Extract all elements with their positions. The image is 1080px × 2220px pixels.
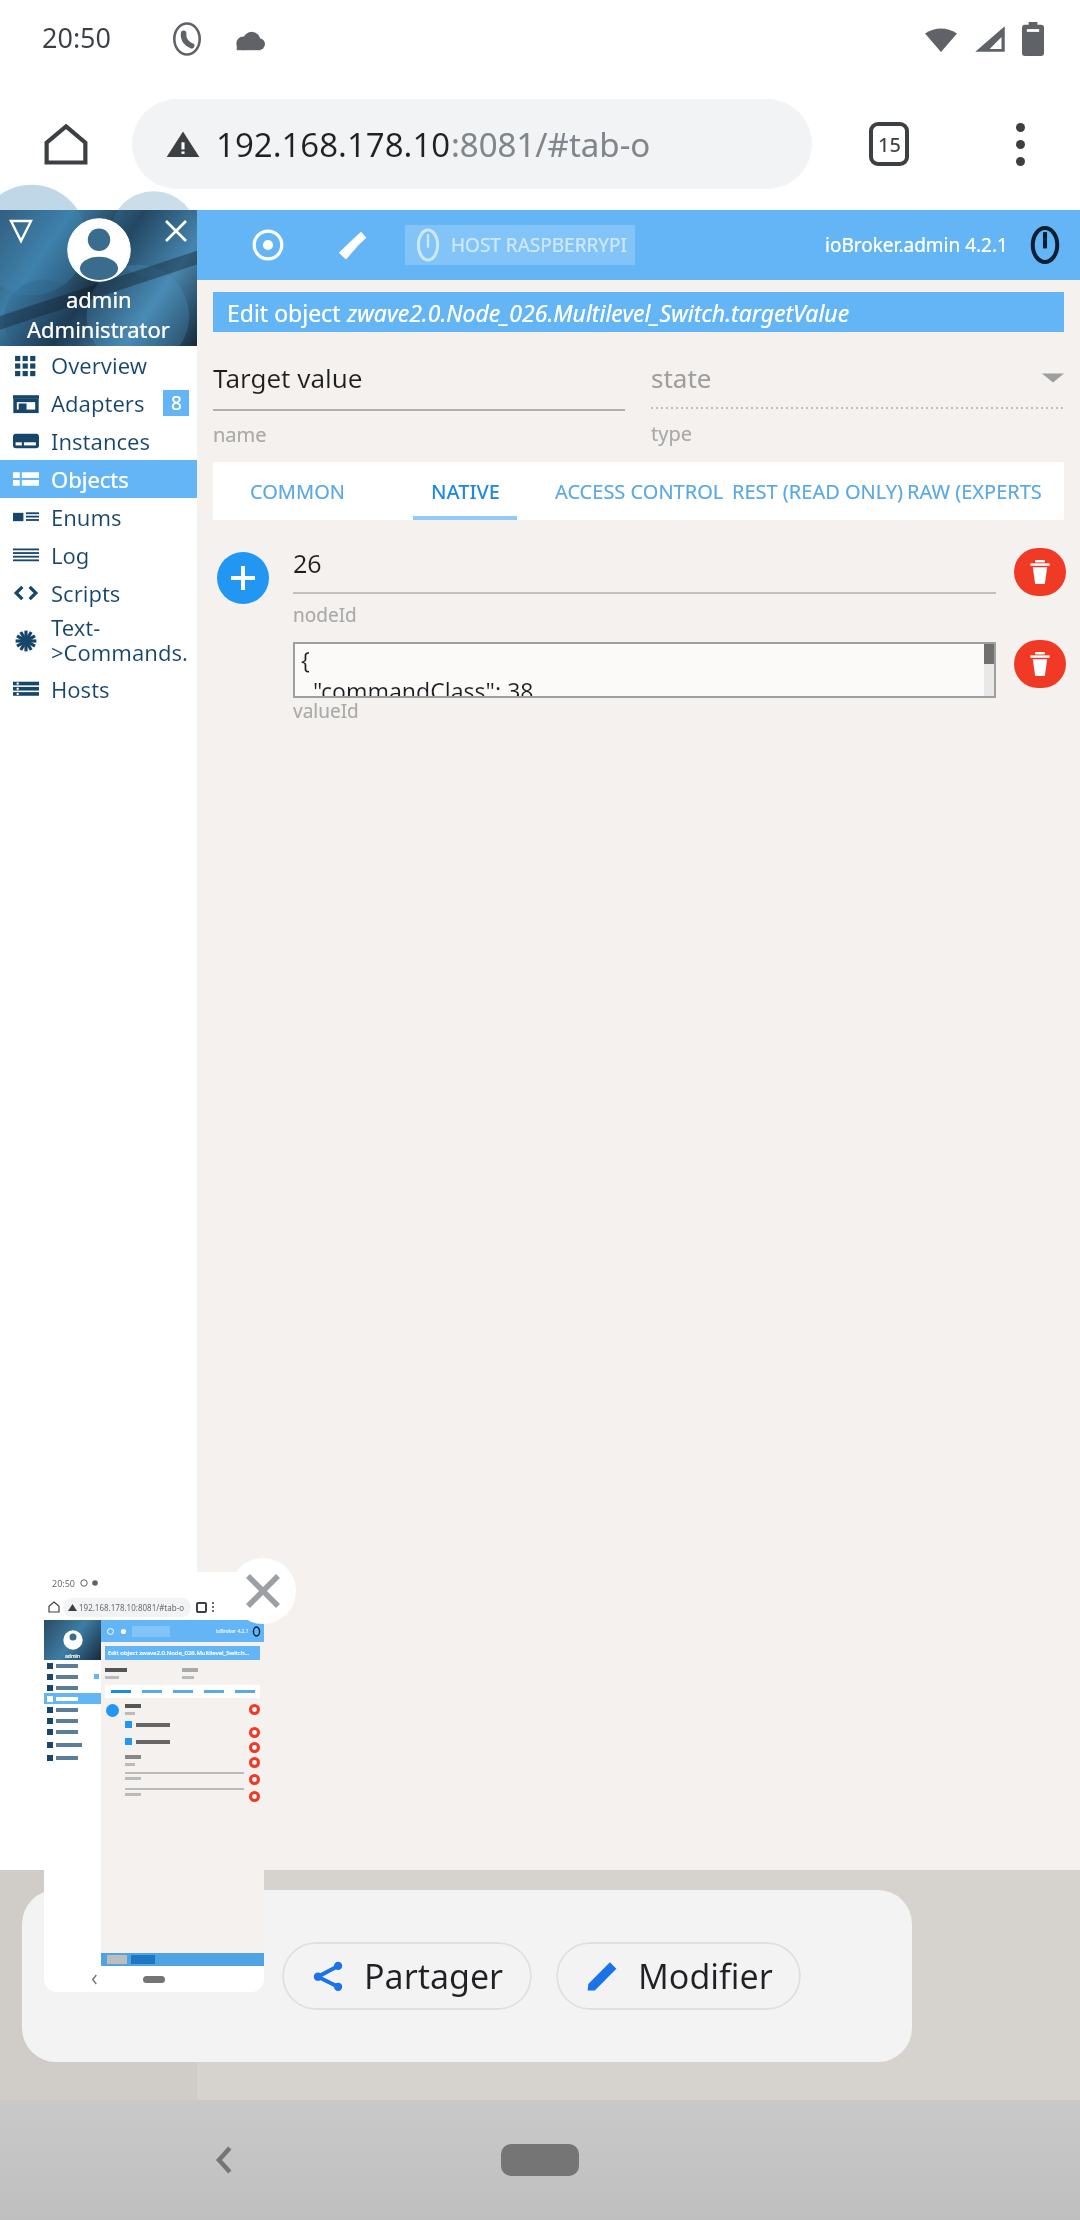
button[interactable]: Add — [217, 552, 269, 604]
button[interactable]: Hosts — [0, 670, 197, 708]
staticText: Instances — [51, 426, 197, 456]
button[interactable]: Modifier — [556, 1942, 801, 2010]
button[interactable]: Delete — [1014, 548, 1066, 596]
button[interactable]: Enums — [0, 498, 197, 536]
staticText: RAW (EXPERTS O… — [907, 478, 1064, 505]
staticText: admin — [65, 1653, 80, 1660]
button[interactable]: COMMON — [213, 462, 381, 520]
button[interactable]: Power — [1022, 222, 1068, 268]
button[interactable]: Delete — [1014, 640, 1066, 688]
staticText: Edit object — [227, 297, 347, 328]
button[interactable]: 192.168.178.10 — [132, 99, 812, 189]
staticText: "commandClass": 38, — [301, 675, 540, 698]
staticText: ioBroker 4.2.1 — [216, 1628, 249, 1635]
button[interactable]: Scripts — [0, 574, 197, 612]
staticText: zwave2.0.Node_026.Multilevel_Switch.targ… — [347, 297, 850, 328]
button[interactable]: Expert mode — [245, 222, 291, 268]
staticText: 20:50 — [52, 1577, 76, 1589]
button[interactable]: Partager — [282, 1942, 532, 2010]
button[interactable]: Overview — [0, 346, 197, 384]
staticText: admin — [66, 284, 132, 314]
staticText: 20:50 — [42, 19, 112, 56]
button[interactable]: Objects — [0, 460, 197, 498]
staticText: name — [213, 421, 267, 448]
staticText: 15 — [878, 131, 901, 158]
button[interactable]: Close preview — [230, 1558, 296, 1624]
staticText: Scripts — [51, 578, 197, 608]
staticText: state — [651, 360, 712, 395]
button[interactable]: NATIVE — [381, 462, 549, 520]
staticText: ACCESS CONTROL — [555, 478, 724, 505]
staticText: Administrator — [27, 314, 170, 344]
button[interactable]: SAVE — [233, 2053, 315, 2093]
staticText: Overview — [51, 350, 197, 380]
button[interactable]: Home — [501, 2144, 579, 2176]
staticText: 192.168.178.10 — [216, 122, 451, 167]
staticText: Partager — [364, 1953, 504, 1999]
staticText: Hosts — [51, 674, 197, 704]
staticText: Objects — [51, 464, 197, 494]
button[interactable]: CANCEL — [337, 2052, 437, 2094]
staticText: :8081/#tab-o — [451, 122, 651, 167]
staticText: Adapters — [51, 388, 163, 418]
button[interactable]: Text- >Commands.0 — [0, 612, 197, 670]
button[interactable]: REST (READ ONLY) — [729, 462, 907, 520]
staticText: type — [651, 420, 692, 447]
staticText: Enums — [51, 502, 197, 532]
button[interactable]: Instances — [0, 422, 197, 460]
button[interactable]: Settings — [329, 222, 375, 268]
staticText: SAVE — [250, 2059, 299, 2088]
button[interactable]: Home — [26, 104, 106, 184]
staticText: Log — [51, 540, 197, 570]
staticText: valueId — [293, 698, 359, 724]
staticText: nodeId — [293, 602, 357, 628]
button[interactable]: Log — [0, 536, 197, 574]
staticText: { — [301, 644, 310, 675]
button[interactable]: Close drawer — [159, 214, 193, 248]
staticText: COMMON — [250, 478, 345, 505]
button[interactable]: Adapters — [0, 384, 197, 422]
staticText: Text- >Commands.0 — [51, 612, 197, 670]
button[interactable]: Tabs, 15 open — [852, 107, 926, 181]
staticText: NATIVE — [431, 478, 500, 505]
button[interactable]: Back — [190, 2125, 260, 2195]
staticText: HOST RASPBERRYPI — [451, 232, 627, 258]
staticText: Modifier — [638, 1953, 773, 1999]
staticText: Target value — [213, 360, 363, 395]
button[interactable]: ACCESS CONTROL — [549, 462, 729, 520]
staticText: REST (READ ONLY) — [732, 478, 904, 505]
staticText: 192.168.178.10:8081/#tab-o — [79, 1602, 185, 1613]
button[interactable]: More options — [980, 104, 1060, 184]
button[interactable]: Collapse — [4, 214, 38, 248]
staticText: 26 — [293, 546, 322, 580]
staticText: ioBroker.admin 4.2.1 — [825, 232, 1008, 258]
staticText: 8 — [171, 390, 182, 416]
button[interactable]: RAW (EXPERTS O… — [907, 462, 1064, 520]
staticText: CANCEL — [348, 2059, 427, 2088]
staticText: Edit object zwave2.0.Node_026.Multilevel… — [108, 1649, 250, 1657]
